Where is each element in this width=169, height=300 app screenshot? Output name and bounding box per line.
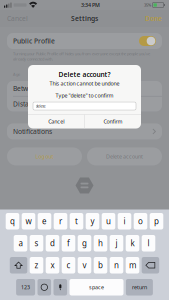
button[interactable]: r [54,213,67,229]
staticText: Public Profile [13,37,55,45]
staticText: h [98,238,103,248]
staticText: a [18,238,22,248]
button[interactable]: Backspace [142,257,159,273]
staticText: z [34,260,38,270]
button[interactable]: Cancel [28,114,84,128]
staticText: u [106,216,111,226]
staticText: delete [35,103,45,109]
button[interactable]: i [118,213,131,229]
staticText: j [115,238,117,248]
staticText: d [50,238,55,248]
button[interactable]: b [94,257,107,273]
staticText: Between 18 and 99 [13,84,74,93]
button[interactable]: Log out [7,147,82,165]
staticText: Turning your Public Profile off hides yo… [13,51,150,62]
staticText: Age [13,72,20,77]
staticText: r [59,216,62,226]
staticText: c [66,260,70,270]
staticText: m [129,260,136,270]
button[interactable]: Cancel [0,10,35,27]
button[interactable]: v [78,257,91,273]
staticText: Notifications [13,127,52,136]
button[interactable]: h [94,235,107,251]
staticText: Settings [71,14,98,23]
button[interactable]: k [126,235,139,251]
button[interactable]: j [110,235,123,251]
button[interactable]: f [62,235,75,251]
staticText: Log out [35,153,53,160]
staticText: 3:34 PM [81,1,100,9]
button[interactable]: s [30,235,43,251]
button[interactable]: u [102,213,115,229]
staticText: 123 [21,284,30,291]
staticText: Type "delete" to confirm [55,92,113,99]
button[interactable]: g [78,235,91,251]
button[interactable]: Distance [7,96,162,111]
button[interactable]: l [142,235,155,251]
staticText: w [25,216,31,226]
staticText: This action cannot be undone [49,80,119,87]
button[interactable]: a [14,235,27,251]
staticText: f [67,238,70,248]
button[interactable]: Next keyboard [37,279,51,295]
button[interactable]: Shift [10,257,27,273]
staticText: Delete account [106,153,143,160]
button[interactable]: o [134,213,147,229]
button[interactable]: p [150,213,163,229]
staticText: t [75,216,78,226]
button[interactable]: Done [138,10,169,27]
staticText: n [114,260,119,270]
button[interactable]: x [46,257,59,273]
button[interactable]: c [62,257,75,273]
staticText: return [132,284,147,291]
staticText: k [130,238,134,248]
button[interactable]: Dictation [53,279,67,295]
button[interactable]: return [126,279,153,295]
staticText: p [154,216,159,226]
staticText: s [34,238,38,248]
button[interactable]: 123 [16,279,35,295]
staticText: Done [145,14,162,23]
button[interactable]: y [86,213,99,229]
staticText: g [82,238,87,248]
button[interactable]: w [22,213,35,229]
staticText: x [50,260,54,270]
button[interactable]: Between 18 and 99 [7,81,162,96]
button[interactable]: m [126,257,139,273]
button[interactable]: d [46,235,59,251]
staticText: b [98,260,103,270]
button[interactable]: q [6,213,19,229]
staticText: o [138,216,143,226]
staticText: e [42,216,47,226]
staticText: Distance [13,99,40,108]
button[interactable]: Confirm [85,114,141,128]
button[interactable]: n [110,257,123,273]
staticText: space [89,284,104,291]
staticText: Delete account? [58,70,110,79]
staticText: y [90,216,94,226]
staticText: Cancel [48,118,64,125]
staticText: Confirm [103,118,122,125]
staticText: 35% [144,2,151,8]
staticText: Cancel [7,14,28,23]
button[interactable]: t [70,213,83,229]
button[interactable]: space [69,279,123,295]
staticText: l [147,238,149,248]
staticText: v [82,260,86,270]
button[interactable]: z [30,257,43,273]
button[interactable]: Public Profile [7,33,162,49]
button[interactable]: Delete account [87,147,162,165]
staticText: q [10,216,15,226]
button[interactable]: Notifications [7,123,162,139]
button[interactable]: e [38,213,51,229]
staticText: i [123,216,125,226]
